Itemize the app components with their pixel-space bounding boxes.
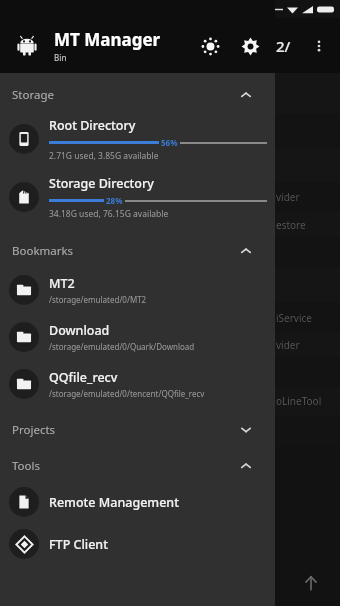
staticText: iService	[276, 311, 312, 325]
staticText: MT Manager	[54, 28, 161, 51]
button[interactable]: Settings	[233, 29, 267, 63]
button[interactable]: App icon	[10, 29, 44, 63]
staticText: /storage/emulated/0/Quark/Download	[49, 341, 195, 352]
button[interactable]: Download	[0, 313, 275, 360]
staticText: Tools	[12, 458, 239, 474]
button[interactable]: Bookmarks	[0, 236, 275, 266]
staticText: 56%	[161, 137, 178, 148]
staticText: Projects	[12, 422, 239, 438]
staticText: Storage	[12, 87, 239, 103]
staticText: Bin	[54, 52, 67, 63]
staticText: Storage Directory	[49, 175, 154, 192]
staticText: MT2	[49, 275, 75, 292]
staticText: Root Directory	[49, 117, 136, 134]
staticText: /storage/emulated/0/tencent/QQfile_recv	[49, 388, 205, 399]
staticText: Download	[49, 322, 110, 339]
staticText: QQfile_recv	[49, 369, 118, 386]
staticText: /storage/emulated/0/MT2	[49, 294, 147, 305]
staticText: 28%	[106, 195, 123, 206]
button[interactable]: Root Directory	[0, 110, 275, 168]
staticText: vider	[276, 190, 300, 204]
staticText: Bookmarks	[12, 243, 239, 259]
button[interactable]: Storage	[0, 80, 275, 110]
button[interactable]: MT2	[0, 266, 275, 313]
button[interactable]: Remote Management	[0, 481, 275, 523]
staticText: 2.71G used, 3.85G available	[49, 150, 159, 162]
staticText: estore	[276, 218, 306, 232]
staticText: Remote Management	[49, 494, 179, 511]
staticText: FTP Client	[49, 536, 108, 553]
staticText: vider	[276, 338, 300, 352]
staticText: 34.18G used, 76.15G available	[49, 208, 169, 220]
button[interactable]: Scroll to top	[296, 568, 326, 598]
button[interactable]: Projects	[0, 415, 275, 445]
button[interactable]: QQfile_recv	[0, 360, 275, 407]
button[interactable]: Storage Directory	[0, 168, 275, 226]
button[interactable]: Brightness	[193, 29, 227, 63]
staticText: oLineTool	[276, 394, 322, 408]
button[interactable]: Tools	[0, 451, 275, 481]
button[interactable]: More options	[304, 31, 334, 61]
button[interactable]: FTP Client	[0, 523, 275, 565]
staticText: 2/	[276, 36, 291, 56]
